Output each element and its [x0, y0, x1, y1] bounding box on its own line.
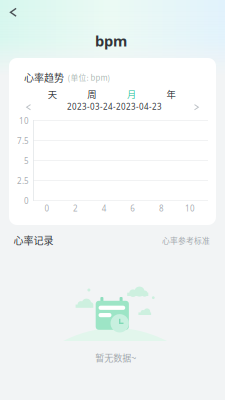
button[interactable]: 年 — [151, 88, 191, 100]
staticText: bpm — [95, 31, 127, 51]
button[interactable]: Next range — [189, 100, 203, 114]
button[interactable]: 天 — [32, 88, 72, 100]
staticText: 心率趋势 — [24, 70, 64, 85]
staticText: 0 — [44, 203, 49, 214]
staticText: 7.5 — [17, 135, 29, 146]
staticText: 年 — [166, 87, 175, 101]
staticText: 0 — [24, 195, 29, 206]
staticText: 暂无数据~ — [95, 351, 136, 364]
staticText: 心率记录 — [13, 233, 53, 247]
staticText: 4 — [102, 203, 107, 214]
staticText: 心率参考标准 — [162, 235, 210, 246]
button[interactable]: 月 — [112, 88, 151, 100]
staticText: 周 — [87, 87, 96, 101]
staticText: 天 — [48, 87, 57, 101]
button[interactable]: Back — [0, 0, 26, 25]
button[interactable]: 心率参考标准 — [150, 234, 210, 246]
staticText: 10 — [185, 203, 195, 214]
staticText: 10 — [19, 115, 29, 126]
staticText: (单位: bpm) — [67, 72, 110, 83]
button[interactable]: 周 — [72, 88, 112, 100]
staticText: 2023-03-24-2023-04-23 — [67, 101, 162, 112]
button[interactable]: Previous range — [21, 100, 35, 114]
staticText: 月 — [127, 87, 136, 101]
staticText: 8 — [159, 203, 164, 214]
staticText: 2 — [73, 203, 78, 214]
staticText: 2.5 — [17, 175, 29, 186]
staticText: 6 — [130, 203, 135, 214]
staticText: 5 — [24, 155, 29, 166]
